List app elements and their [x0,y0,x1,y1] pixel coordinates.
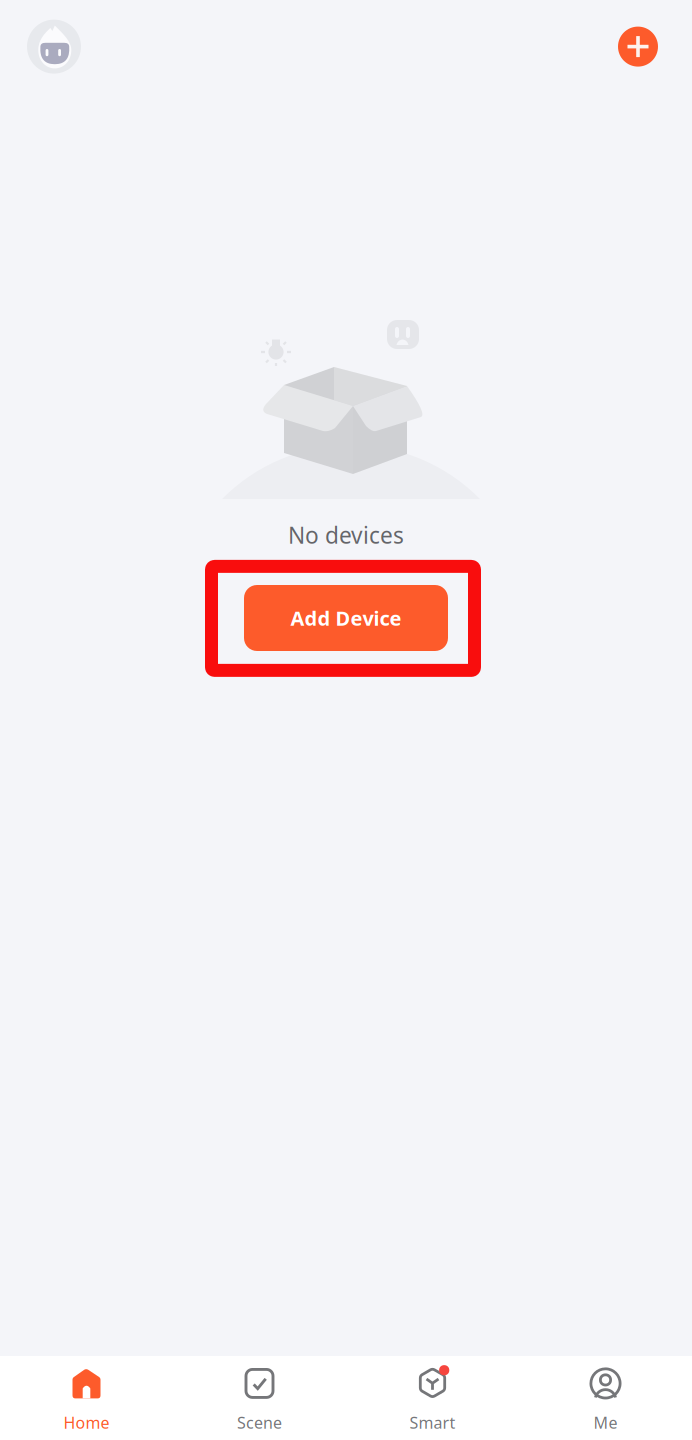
staticText: Add Device [290,605,401,631]
button[interactable]: Smart [346,1356,519,1440]
button[interactable]: Add device [618,27,658,67]
button[interactable]: Profile [27,20,81,74]
staticText: Scene [237,1412,282,1433]
button[interactable]: Home [0,1356,173,1440]
staticText: Smart [409,1412,455,1433]
staticText: Home [63,1412,109,1433]
button[interactable]: Add Device [244,585,448,651]
button[interactable]: Scene [173,1356,346,1440]
button[interactable]: Me [519,1356,692,1440]
staticText: No devices [288,520,404,550]
staticText: Me [593,1412,617,1433]
